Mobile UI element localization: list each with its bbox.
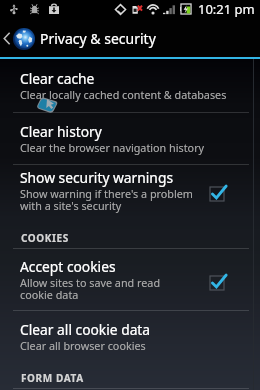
staticText: Clear cache — [20, 69, 95, 88]
staticText: Privacy & security — [40, 29, 156, 48]
staticText: Clear history — [20, 122, 102, 141]
button[interactable]: Accept cookies — [0, 249, 260, 310]
staticText: Clear the browser navigation history — [20, 140, 205, 155]
staticText: Clear locally cached content & databases — [20, 87, 227, 102]
button[interactable]: Navigate up — [0, 20, 260, 57]
button[interactable]: Clear history — [0, 113, 260, 164]
staticText: Show warning if there's a problem with a… — [20, 186, 193, 213]
staticText: Clear all browser cookies — [20, 338, 146, 353]
staticText: FORM DATA — [21, 371, 84, 385]
staticText: Show security warnings — [20, 168, 173, 187]
other: Navigate up — [3, 32, 10, 45]
button[interactable]: Clear all cookie data — [0, 311, 260, 362]
button[interactable]: Show security warnings — [0, 165, 260, 216]
staticText: Clear all cookie data — [20, 320, 151, 339]
staticText: Allow sites to save and read cookie data — [20, 275, 161, 302]
staticText: Accept cookies — [20, 257, 116, 276]
staticText: COOKIES — [21, 231, 69, 245]
button[interactable]: Toggle — [205, 182, 229, 206]
staticText: 10:21 pm — [198, 0, 255, 18]
button[interactable]: Toggle — [205, 271, 229, 295]
button[interactable]: Clear cache — [0, 59, 260, 112]
